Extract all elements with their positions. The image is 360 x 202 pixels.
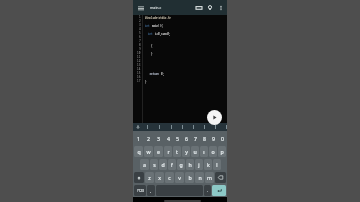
staticText: f <box>171 161 173 168</box>
button[interactable]: f <box>168 159 176 170</box>
button[interactable]: . <box>204 185 211 196</box>
button[interactable]: e <box>154 146 163 157</box>
button[interactable]: ?123 <box>134 185 146 196</box>
staticText: 16 <box>137 75 141 79</box>
button[interactable]: v <box>175 172 184 183</box>
button[interactable]: o <box>209 146 217 157</box>
button[interactable]: Backspace <box>215 172 226 183</box>
staticText: 3 <box>139 23 141 27</box>
button[interactable]: Enter <box>212 185 226 196</box>
button[interactable] <box>215 123 226 131</box>
staticText: ?123 <box>137 189 144 193</box>
staticText: r <box>167 148 170 155</box>
staticText: u <box>193 148 197 155</box>
staticText: l <box>216 161 218 168</box>
button[interactable]: c <box>165 172 174 183</box>
staticText: a <box>143 161 146 168</box>
staticText: } <box>145 80 147 83</box>
button[interactable]: q <box>134 146 143 157</box>
staticText: c <box>168 174 171 181</box>
button[interactable]: Voice input <box>135 124 141 130</box>
staticText: . <box>207 188 209 194</box>
button[interactable]: 7 <box>191 131 200 145</box>
staticText: p <box>220 148 224 155</box>
button[interactable]: y <box>182 146 190 157</box>
staticText: 7 <box>194 135 197 142</box>
button[interactable]: 4 <box>163 131 173 145</box>
button[interactable]: x <box>155 172 164 183</box>
staticText: k <box>207 161 210 168</box>
button[interactable]: a <box>140 159 149 170</box>
button[interactable]: h <box>186 159 194 170</box>
button[interactable]: Hints <box>204 2 215 13</box>
button[interactable] <box>182 123 193 131</box>
button[interactable] <box>193 123 204 131</box>
button[interactable]: k <box>204 159 212 170</box>
staticText: v <box>178 174 181 181</box>
staticText: 11 <box>137 55 141 59</box>
button[interactable]: b <box>185 172 194 183</box>
button[interactable]: 3 <box>153 131 163 145</box>
button[interactable]: 6 <box>182 131 191 145</box>
staticText: 2 <box>147 135 150 142</box>
staticText: { <box>145 44 153 47</box>
staticText: 0 <box>221 135 224 142</box>
staticText: x <box>158 174 161 181</box>
button[interactable]: More options <box>215 2 226 13</box>
button[interactable]: Menu <box>135 2 146 13</box>
staticText: o <box>211 148 215 155</box>
button[interactable]: n <box>195 172 204 183</box>
staticText: #include<stdio.h> <box>145 16 171 19</box>
staticText: 5 <box>176 135 179 142</box>
button[interactable]: Projects <box>193 2 204 13</box>
button[interactable]: j <box>195 159 203 170</box>
staticText: h <box>188 161 192 168</box>
button[interactable]: 1 <box>133 131 143 145</box>
staticText: d <box>161 161 165 168</box>
staticText: 8 <box>139 43 141 47</box>
button[interactable]: 0 <box>218 131 227 145</box>
button[interactable]: 8 <box>200 131 209 145</box>
button[interactable]: r <box>164 146 172 157</box>
button[interactable]: Run <box>207 110 222 125</box>
staticText: n <box>198 174 202 181</box>
staticText: m <box>207 174 212 181</box>
button[interactable]: 5 <box>173 131 182 145</box>
button[interactable]: w <box>144 146 153 157</box>
button[interactable]: l <box>213 159 221 170</box>
staticText: 5 <box>139 31 141 35</box>
staticText: z <box>148 174 151 181</box>
button[interactable]: Shift <box>134 172 144 183</box>
staticText: t <box>176 148 178 155</box>
button[interactable]: g <box>177 159 185 170</box>
button[interactable] <box>159 123 171 131</box>
button[interactable]: u <box>191 146 199 157</box>
staticText: 6 <box>185 135 188 142</box>
button[interactable]: m <box>205 172 214 183</box>
button[interactable] <box>171 123 182 131</box>
button[interactable] <box>147 123 159 131</box>
staticText: 14 <box>137 67 141 71</box>
staticText: w <box>146 148 151 155</box>
button[interactable]: t <box>173 146 181 157</box>
button[interactable]: 9 <box>209 131 218 145</box>
button[interactable]: d <box>159 159 167 170</box>
staticText: return <box>145 72 161 75</box>
staticText: s <box>153 161 156 168</box>
button[interactable]: , <box>147 185 155 196</box>
staticText: 15 <box>137 71 141 75</box>
button[interactable]: 2 <box>143 131 153 145</box>
staticText: main(){ <box>152 24 163 27</box>
staticText: 1 <box>137 135 140 142</box>
staticText: , <box>150 188 152 194</box>
staticText: b <box>188 174 192 181</box>
button[interactable]: ı <box>200 146 208 157</box>
button[interactable] <box>204 123 215 131</box>
button[interactable]: z <box>145 172 154 183</box>
staticText: 9 <box>139 47 141 51</box>
button[interactable]: p <box>218 146 226 157</box>
button[interactable]: s <box>150 159 158 170</box>
staticText: 0; <box>161 72 165 75</box>
staticText: j <box>198 161 200 168</box>
